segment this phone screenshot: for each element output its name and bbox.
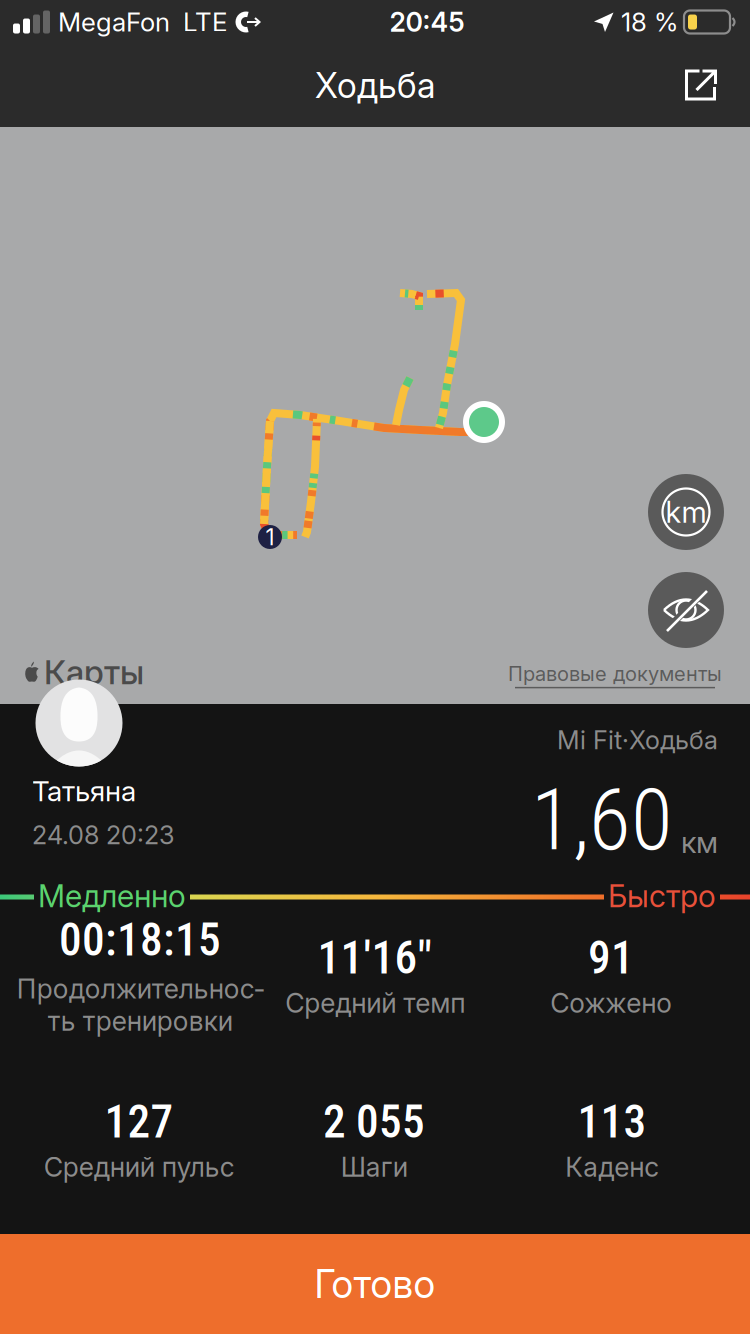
staticText: 127 — [104, 1095, 173, 1148]
staticText: 1 — [265, 523, 274, 551]
button[interactable]: Скрыть трек — [648, 572, 724, 648]
staticText: 11'16" — [317, 931, 432, 984]
button[interactable]: Единицы — [648, 474, 724, 550]
staticText: MegaFon — [58, 6, 170, 38]
staticText: 91 — [588, 931, 634, 984]
staticText: Медленно — [38, 877, 186, 914]
staticText: 2 055 — [323, 1095, 425, 1148]
staticText: Средний пульс — [43, 1151, 234, 1183]
staticText: LTE — [183, 6, 227, 38]
staticText: 24.08 20:23 — [32, 820, 175, 850]
button[interactable]: Готово — [0, 1234, 750, 1334]
staticText: Продолжительность тренировки — [16, 973, 263, 1037]
staticText: 20:45 — [389, 6, 464, 38]
staticText: Ходьба — [315, 64, 435, 106]
staticText: Mi Fit·Ходьба — [557, 725, 718, 755]
button[interactable]: Поделиться — [669, 53, 733, 117]
staticText: 18 % — [621, 6, 678, 38]
staticText: 00:18:15 — [59, 913, 221, 966]
staticText: 1,60 — [531, 770, 673, 870]
staticText: Правовые документы — [508, 662, 722, 686]
staticText: km — [665, 494, 706, 530]
staticText: Сожжено — [550, 987, 672, 1019]
staticText: Средний темп — [285, 987, 465, 1019]
staticText: Татьяна — [32, 774, 136, 808]
staticText: 113 — [577, 1095, 646, 1148]
staticText: Карты — [44, 652, 144, 692]
staticText: Быстро — [608, 877, 716, 914]
staticText: Готово — [314, 1261, 435, 1307]
staticText: Каденс — [565, 1151, 659, 1183]
staticText: км — [681, 824, 718, 860]
staticText: Шаги — [340, 1151, 407, 1183]
